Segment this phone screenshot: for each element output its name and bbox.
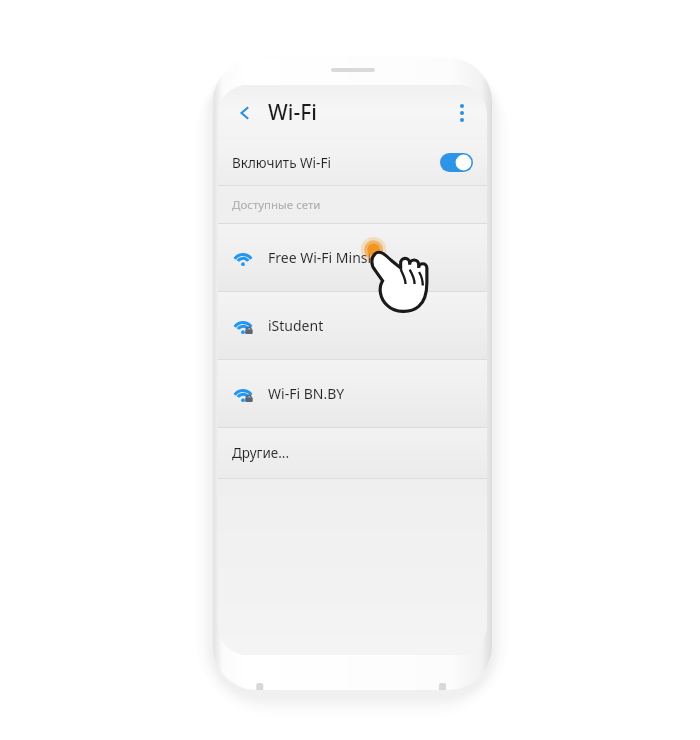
- button[interactable]: Back: [228, 96, 262, 130]
- staticText: Доступные сети: [232, 197, 321, 213]
- staticText: Включить Wi-Fi: [232, 154, 331, 172]
- staticText: Wi-Fi: [268, 98, 317, 127]
- button[interactable]: Включить Wi-Fi: [218, 140, 487, 185]
- button[interactable]: More options: [445, 96, 479, 130]
- staticText: Другие...: [232, 444, 290, 462]
- button[interactable]: iStudent: [218, 292, 487, 359]
- staticText: Free Wi-Fi Minsk: [268, 248, 376, 267]
- button[interactable]: Другие...: [218, 428, 487, 478]
- staticText: Wi-Fi BN.BY: [268, 384, 345, 403]
- button[interactable]: Wi-Fi BN.BY: [218, 360, 487, 427]
- staticText: iStudent: [268, 316, 324, 335]
- other: Wi-Fi on: [440, 153, 473, 172]
- button[interactable]: Free Wi-Fi Minsk: [218, 224, 487, 291]
